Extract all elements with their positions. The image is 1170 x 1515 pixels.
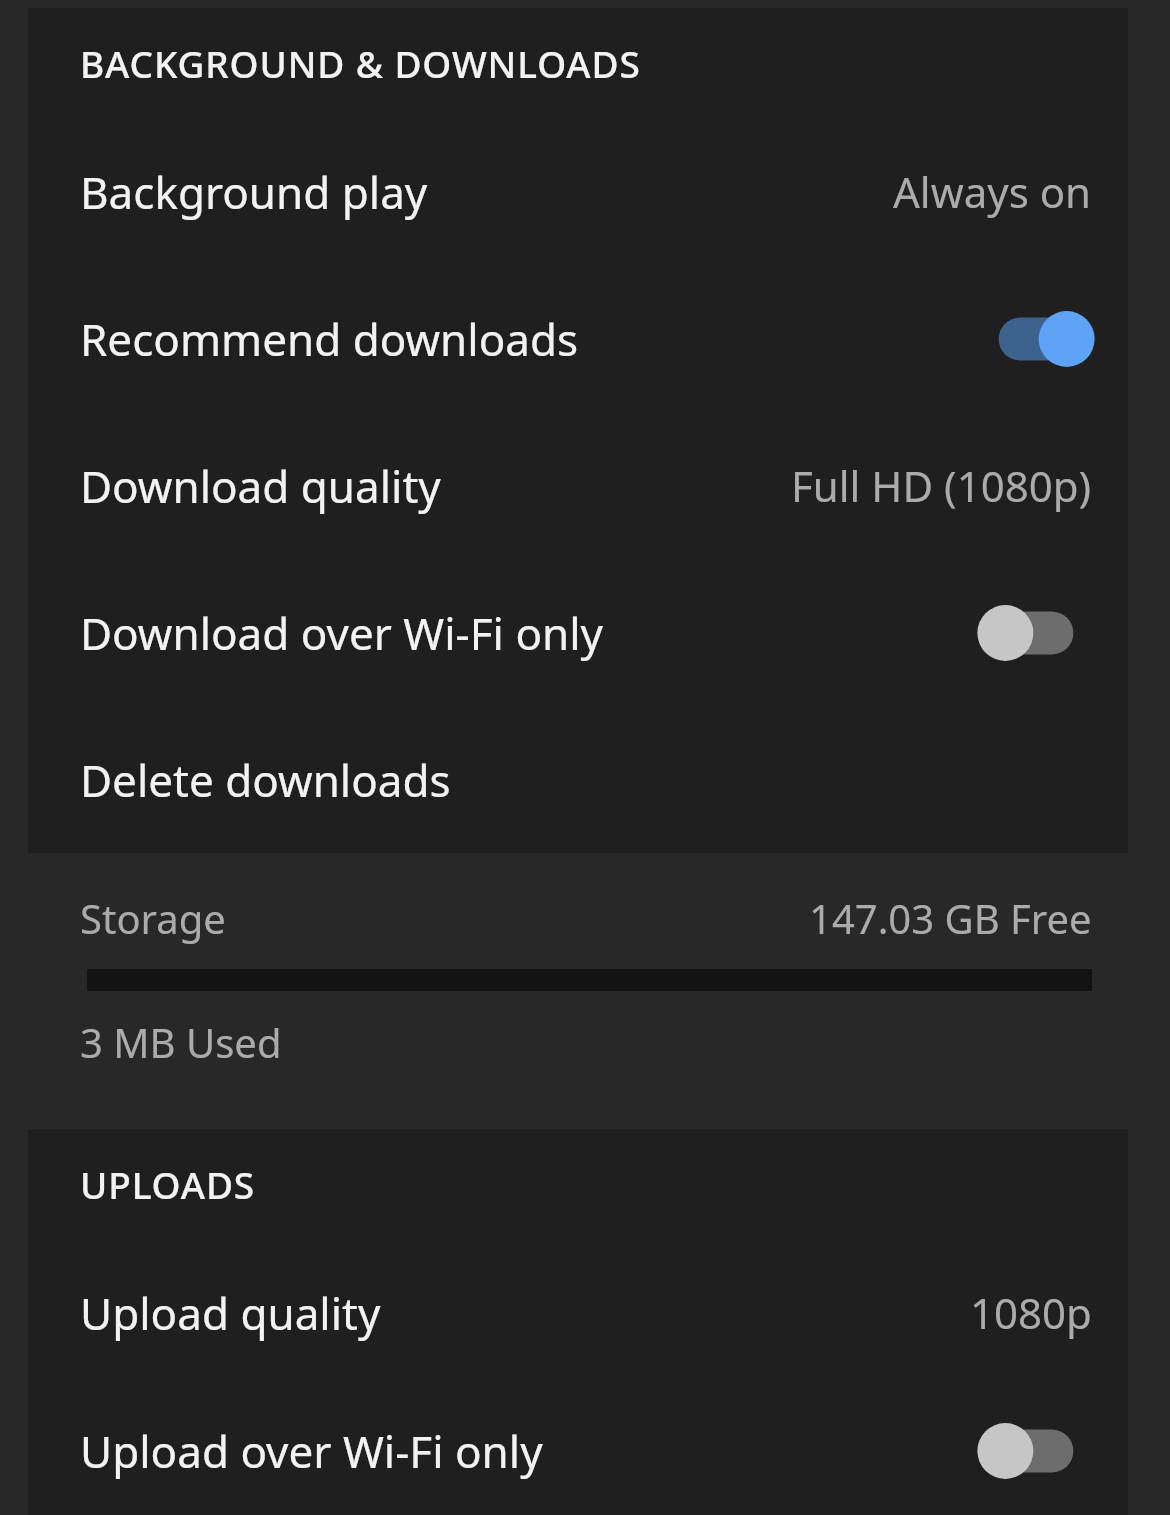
- button[interactable]: Download over Wi-Fi only: [28, 559, 1128, 706]
- staticText: 1080p: [970, 1284, 1092, 1341]
- button[interactable]: Download over Wi-Fi only: [980, 602, 1092, 664]
- button[interactable]: Delete downloads: [28, 706, 1128, 853]
- staticText: Always on: [893, 163, 1092, 220]
- staticText: Storage: [80, 891, 809, 945]
- staticText: Full HD (1080p): [791, 457, 1092, 514]
- button[interactable]: Recommend downloads: [28, 265, 1128, 412]
- staticText: BACKGROUND & DOWNLOADS: [80, 38, 641, 88]
- staticText: 3 MB Used: [80, 1015, 282, 1069]
- button[interactable]: Download quality: [28, 412, 1128, 559]
- staticText: Upload quality: [80, 1283, 970, 1343]
- staticText: Download over Wi-Fi only: [80, 603, 980, 663]
- button[interactable]: Recommend downloads: [980, 308, 1092, 370]
- staticText: Upload over Wi-Fi only: [80, 1421, 980, 1481]
- button[interactable]: Upload quality: [28, 1239, 1128, 1386]
- staticText: 147.03 GB Free: [809, 891, 1092, 945]
- staticText: Recommend downloads: [80, 309, 980, 369]
- staticText: Background play: [80, 162, 893, 222]
- button[interactable]: Background play: [28, 118, 1128, 265]
- button[interactable]: Upload over Wi-Fi only: [28, 1386, 1128, 1515]
- staticText: Download quality: [80, 456, 791, 516]
- staticText: UPLOADS: [80, 1159, 256, 1209]
- button[interactable]: Upload over Wi-Fi only: [980, 1420, 1092, 1482]
- staticText: Delete downloads: [80, 750, 1092, 810]
